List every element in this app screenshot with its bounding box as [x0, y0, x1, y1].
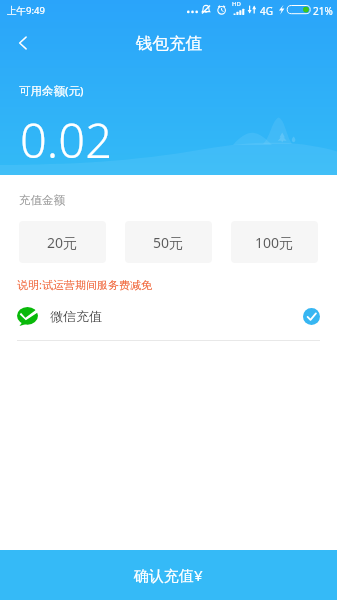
staticText: 确认充值¥ — [134, 565, 203, 585]
button[interactable]: 100元 — [231, 221, 318, 263]
button[interactable]: 50元 — [125, 221, 212, 263]
button[interactable]: 微信充值 — [0, 292, 337, 340]
staticText: 100元 — [255, 233, 294, 252]
staticText: 20元 — [47, 233, 78, 252]
staticText: 说明:试运营期间服务费减免 — [17, 277, 152, 292]
staticText: 4G — [260, 4, 273, 18]
staticText: HD — [232, 0, 241, 8]
staticText: 微信充值 — [50, 308, 102, 324]
button[interactable]: 确认充值¥ — [0, 550, 337, 600]
staticText: 充值金额 — [19, 193, 65, 207]
button[interactable]: Back — [6, 26, 40, 60]
staticText: 钱包充值 — [136, 33, 202, 54]
staticText: 上午9:49 — [7, 4, 45, 17]
staticText: 0.02 — [20, 108, 112, 172]
staticText: 50元 — [153, 233, 184, 252]
staticText: 21% — [313, 4, 333, 18]
button[interactable]: 20元 — [19, 221, 106, 263]
staticText: 可用余额(元) — [19, 83, 84, 99]
